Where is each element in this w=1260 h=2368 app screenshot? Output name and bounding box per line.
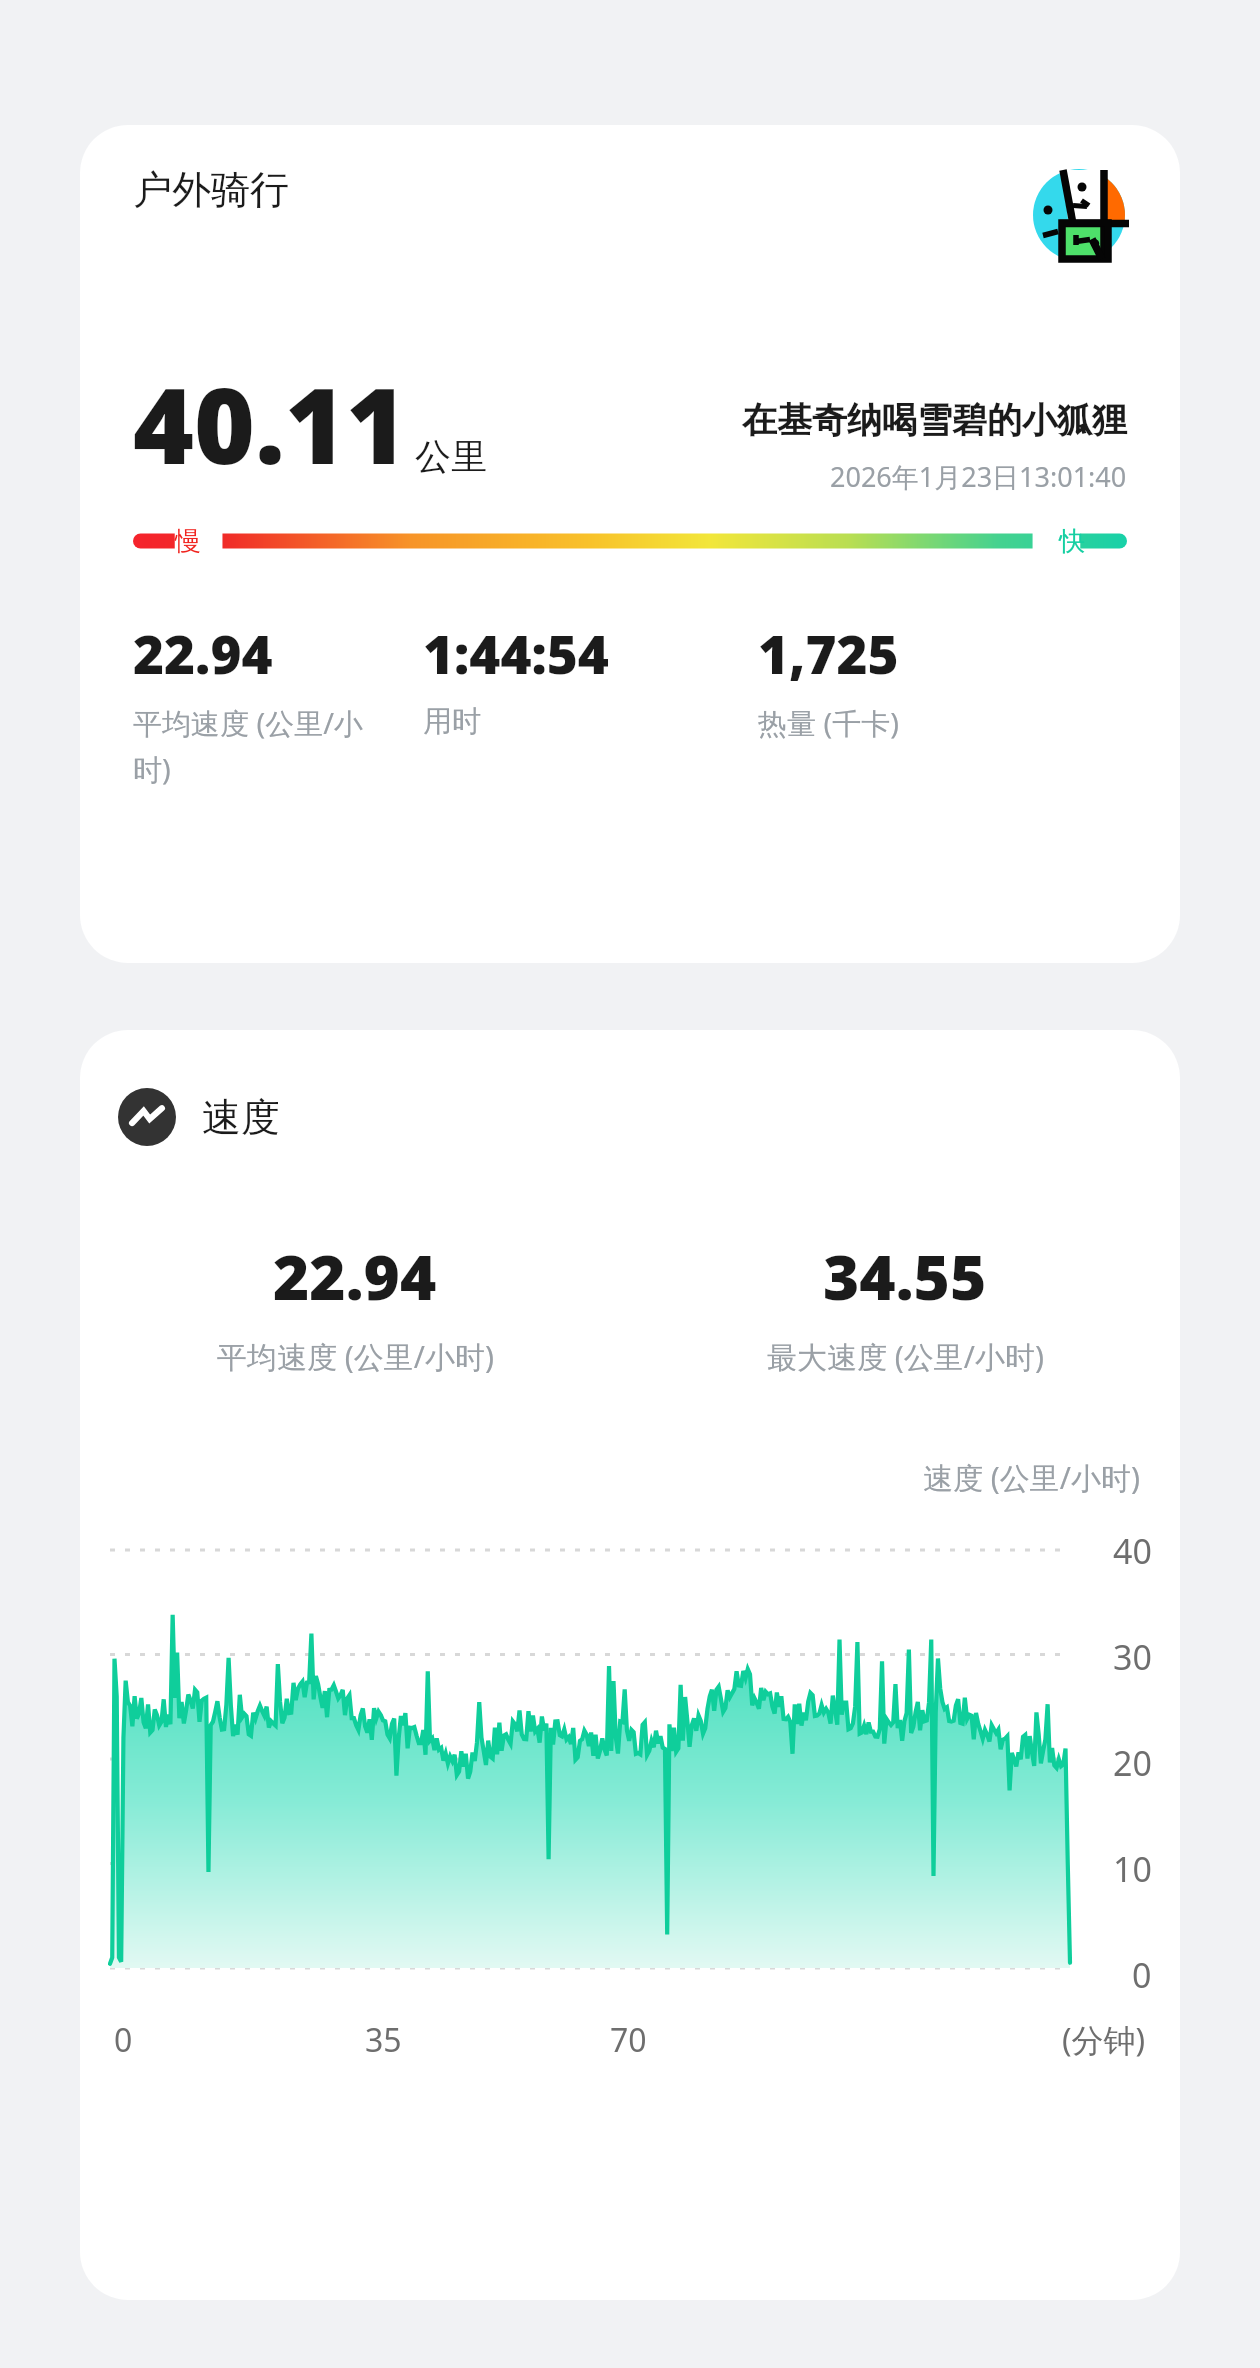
staticText: 慢 — [175, 525, 201, 558]
staticText: 20 — [1113, 1740, 1152, 1786]
button[interactable]: 速度 — [80, 1030, 1180, 2300]
staticText: (分钟) — [1062, 2018, 1146, 2062]
staticText: 1:44:54 — [423, 617, 609, 689]
button[interactable]: 速度 — [80, 1088, 1180, 1146]
staticText: 30 — [1113, 1634, 1152, 1680]
staticText: 2026年1月23日13:01:40 — [830, 458, 1127, 495]
staticText: 22.94 — [133, 617, 273, 689]
staticText: 速度 (公里/小时) — [923, 1457, 1140, 1498]
staticText: 最大速度 (公里/小时) — [767, 1336, 1044, 1377]
staticText: 在基奇纳喝雪碧的小狐狸 — [627, 398, 1127, 442]
staticText: 户外骑行 — [133, 165, 289, 214]
staticText: 热量 (千卡) — [758, 703, 899, 743]
staticText: 22.94 — [273, 1234, 437, 1318]
staticText: 1,725 — [758, 617, 899, 689]
staticText: 平均速度 (公里/小 时) — [133, 703, 364, 788]
staticText: 速度 — [202, 1093, 280, 1142]
staticText: 40 — [1113, 1528, 1152, 1574]
staticText: 快 — [1059, 525, 1085, 558]
staticText: 10 — [1113, 1846, 1152, 1892]
staticText: 0 — [1132, 1952, 1152, 1998]
button[interactable]: 户外骑行 — [80, 125, 1180, 963]
staticText: 用时 — [423, 703, 481, 740]
staticText: 公里 — [415, 434, 487, 479]
staticText: 35 — [365, 2018, 402, 2062]
staticText: 平均速度 (公里/小时) — [217, 1336, 494, 1377]
staticText: 70 — [610, 2018, 647, 2062]
staticText: 34.55 — [823, 1234, 987, 1318]
staticText: 0 — [114, 2018, 133, 2062]
button[interactable]: 用户头像 — [1032, 165, 1132, 265]
staticText: 40.11 — [133, 353, 407, 495]
